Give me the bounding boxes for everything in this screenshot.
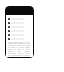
button[interactable] <box>6 17 33 21</box>
button[interactable] <box>6 37 33 41</box>
button[interactable] <box>6 21 33 25</box>
button[interactable] <box>6 29 33 33</box>
staticText: Lorem ipsum dolor sit amet, consectetur … <box>8 41 30 57</box>
button[interactable] <box>6 33 33 37</box>
button[interactable] <box>6 25 33 29</box>
